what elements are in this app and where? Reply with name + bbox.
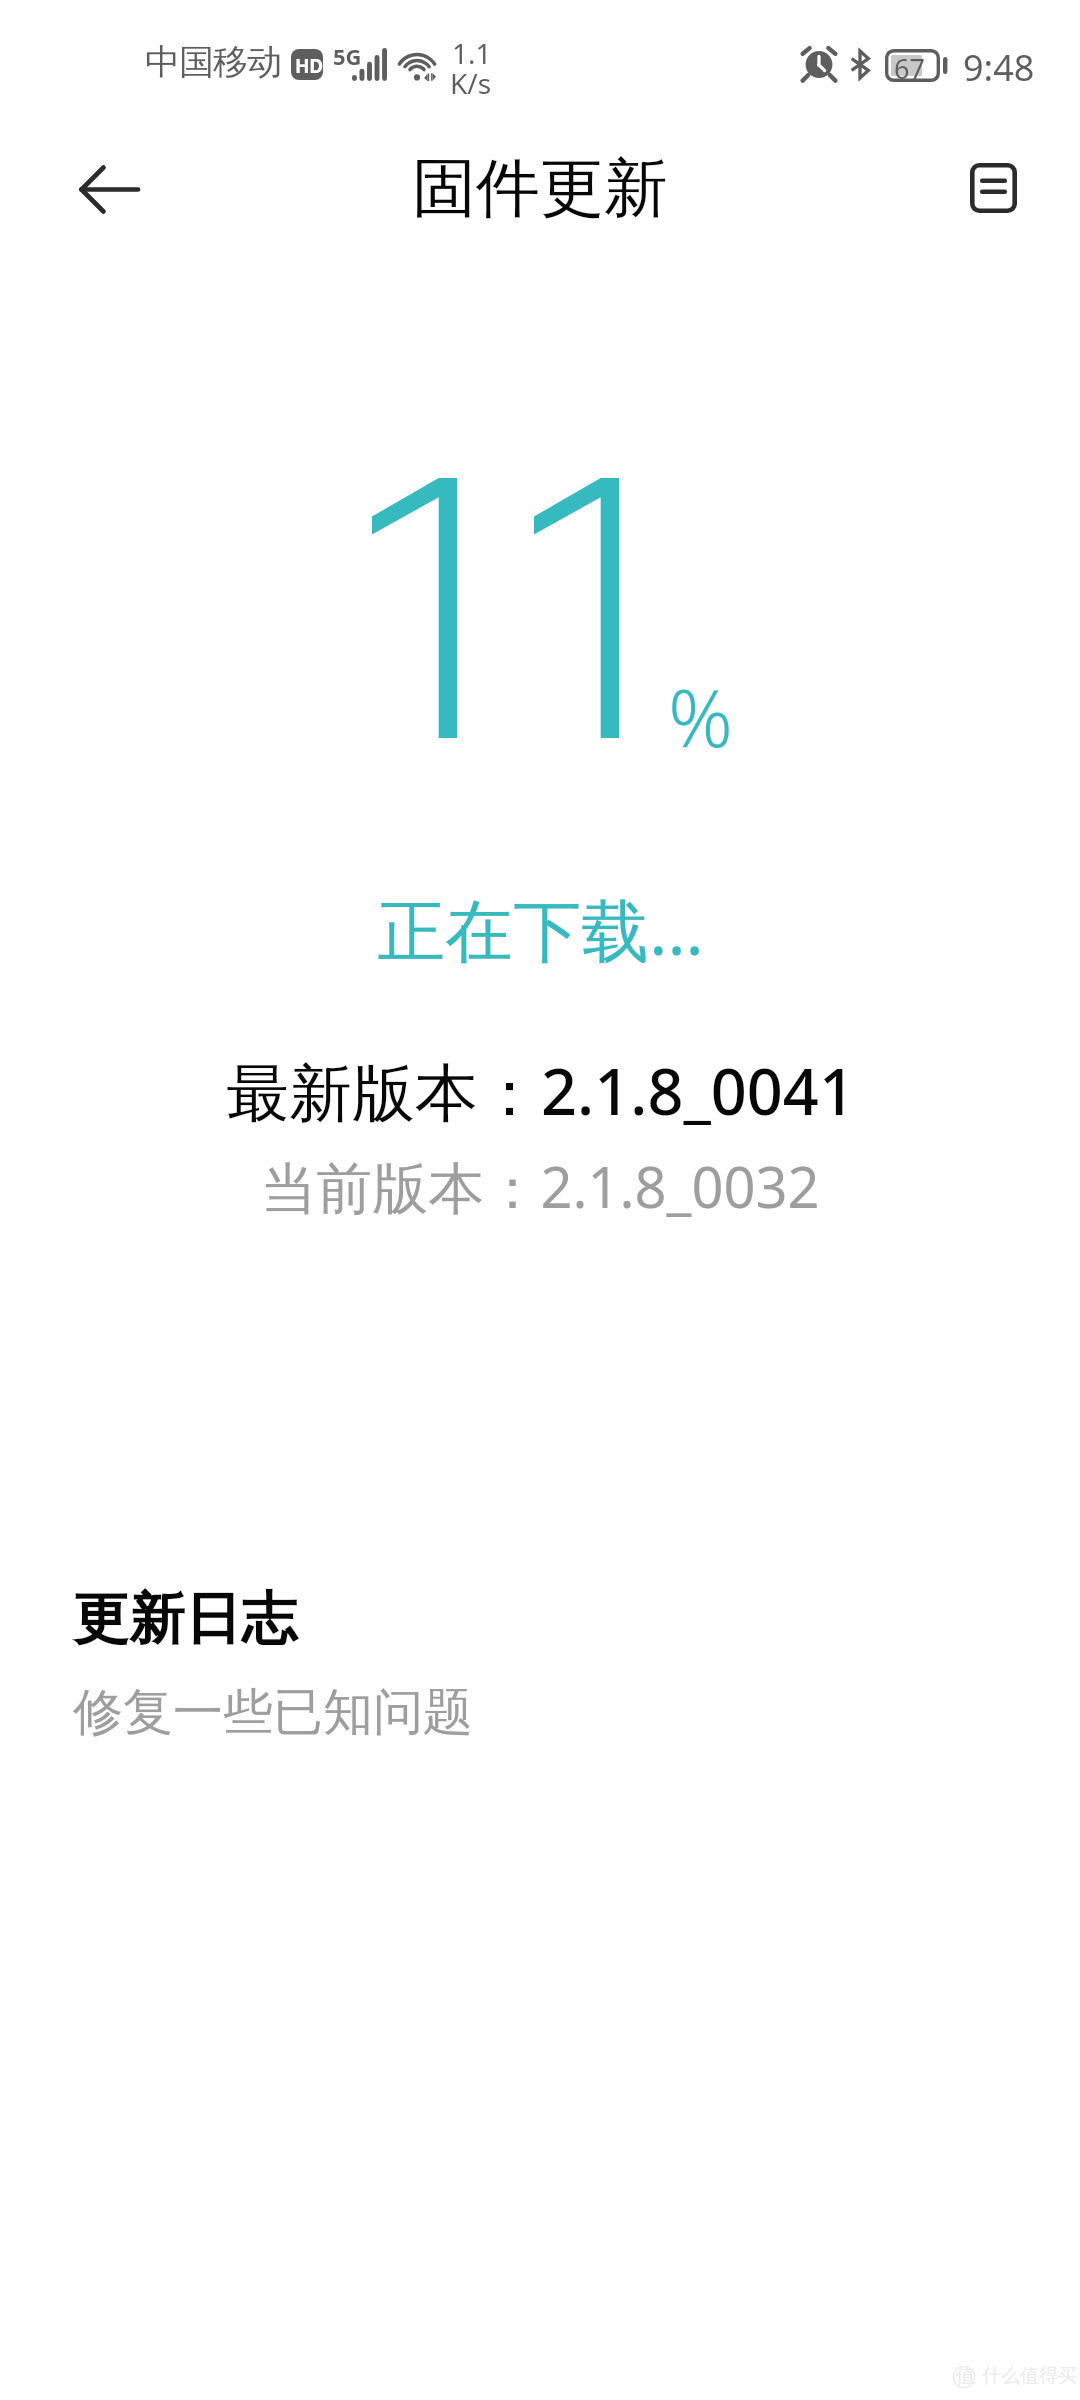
staticText: 修复一些已知问题	[73, 1681, 473, 1744]
button[interactable]: Back	[50, 150, 150, 228]
staticText: 当前版本：2.1.8_0032	[260, 1148, 820, 1224]
staticText: HD	[295, 53, 323, 79]
staticText: 正在下载...	[377, 882, 704, 975]
staticText: 固件更新	[412, 148, 668, 229]
staticText: 值	[956, 2364, 975, 2388]
staticText: 9:48	[963, 43, 1035, 92]
staticText: 中国移动	[145, 40, 282, 84]
staticText: 什么值得买	[982, 2364, 1077, 2388]
staticText: 5G	[333, 41, 362, 71]
staticText: 最新版本：2.1.8_0041	[226, 1048, 855, 1134]
staticText: %	[668, 661, 733, 770]
staticText: K/s	[450, 64, 492, 102]
staticText: 67	[894, 50, 925, 81]
staticText: 更新日志	[73, 1584, 297, 1655]
staticText: 1.1	[452, 34, 492, 72]
button[interactable]: Menu	[945, 148, 1041, 228]
